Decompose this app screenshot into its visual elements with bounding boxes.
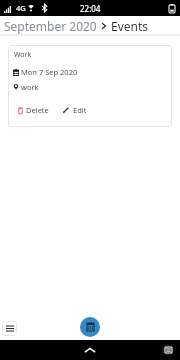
staticText: work bbox=[21, 82, 39, 92]
button[interactable]: Add event bbox=[80, 317, 100, 337]
button[interactable]: Back bbox=[82, 342, 98, 358]
button[interactable]: Delete bbox=[13, 102, 52, 118]
staticText: Events bbox=[111, 18, 149, 34]
staticText: September 2020 bbox=[4, 18, 97, 34]
staticText: Edit bbox=[73, 105, 87, 115]
staticText: Delete bbox=[26, 105, 49, 115]
button[interactable]: Edit bbox=[60, 102, 90, 118]
staticText: 22:04 bbox=[80, 3, 101, 14]
button[interactable]: Menu bbox=[2, 321, 17, 336]
staticText: Mon 7 Sep 2020 bbox=[21, 67, 78, 77]
staticText: 4G bbox=[16, 3, 26, 13]
staticText: Work bbox=[14, 50, 32, 60]
button[interactable]: Screenshot bbox=[162, 344, 174, 356]
